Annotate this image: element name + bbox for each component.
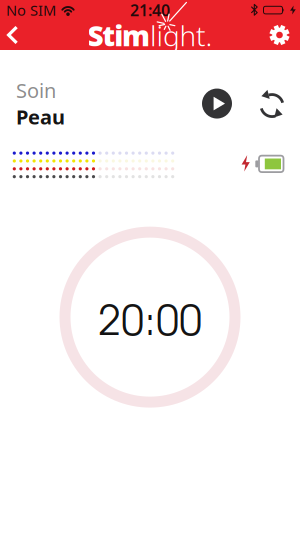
button[interactable]: Repeat: [257, 91, 287, 121]
staticText: 21:40: [130, 0, 170, 21]
button[interactable]: Play: [202, 89, 232, 119]
button[interactable]: Back: [0, 20, 18, 49]
staticText: Peau: [16, 104, 65, 130]
staticText: 20:00: [98, 305, 201, 343]
staticText: Stim: [88, 17, 150, 54]
staticText: No SIM: [6, 0, 56, 20]
staticText: light.: [150, 17, 212, 54]
button[interactable]: Settings: [269, 20, 300, 49]
staticText: Soin: [16, 77, 56, 104]
